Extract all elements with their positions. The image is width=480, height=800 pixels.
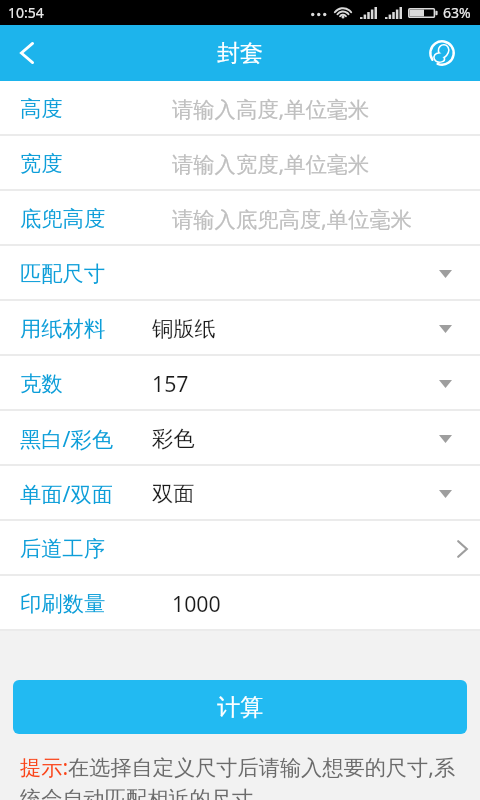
staticText: 请输入宽度,单位毫米 <box>172 149 370 178</box>
staticText: 请输入底兜高度,单位毫米 <box>172 204 412 233</box>
button[interactable]: 克数 <box>0 356 480 411</box>
staticText: 157 <box>152 369 189 398</box>
button[interactable]: 用纸材料 <box>0 301 480 356</box>
button[interactable]: 底兜高度 <box>0 191 480 246</box>
staticText: 双面 <box>152 480 195 507</box>
staticText: 封套 <box>217 39 263 68</box>
staticText: 铜版纸 <box>152 315 216 342</box>
staticText: 彩色 <box>152 425 195 452</box>
staticText: 印刷数量 <box>20 590 106 617</box>
staticText: 匹配尺寸 <box>20 260 106 287</box>
staticText: 宽度 <box>20 150 63 177</box>
staticText: 黑白/彩色 <box>20 424 114 453</box>
button[interactable]: Back <box>0 26 54 80</box>
button[interactable]: 匹配尺寸 <box>0 246 480 301</box>
staticText: 计算 <box>217 693 263 722</box>
staticText: 后道工序 <box>20 535 106 562</box>
button[interactable]: 高度 <box>0 81 480 136</box>
staticText: 请输入高度,单位毫米 <box>172 94 370 123</box>
button[interactable]: 计算 <box>13 680 467 734</box>
staticText: 63% <box>443 3 471 22</box>
button[interactable]: 单面/双面 <box>0 466 480 521</box>
button[interactable]: 后道工序 <box>0 521 480 576</box>
staticText: 用纸材料 <box>20 315 106 342</box>
button[interactable]: 印刷数量 <box>0 576 480 631</box>
staticText: 1000 <box>172 589 221 618</box>
staticText: 10:54 <box>8 3 44 22</box>
staticText: 克数 <box>20 370 63 397</box>
staticText: 高度 <box>20 95 63 122</box>
button[interactable]: 宽度 <box>0 136 480 191</box>
button[interactable]: 黑白/彩色 <box>0 411 480 466</box>
staticText: 底兜高度 <box>20 205 106 232</box>
button[interactable]: Call service <box>417 28 467 78</box>
staticText: 单面/双面 <box>20 479 114 508</box>
staticText: 提示:在选择自定义尺寸后请输入想要的尺寸,系统会自动匹配相近的尺寸 <box>20 752 474 800</box>
